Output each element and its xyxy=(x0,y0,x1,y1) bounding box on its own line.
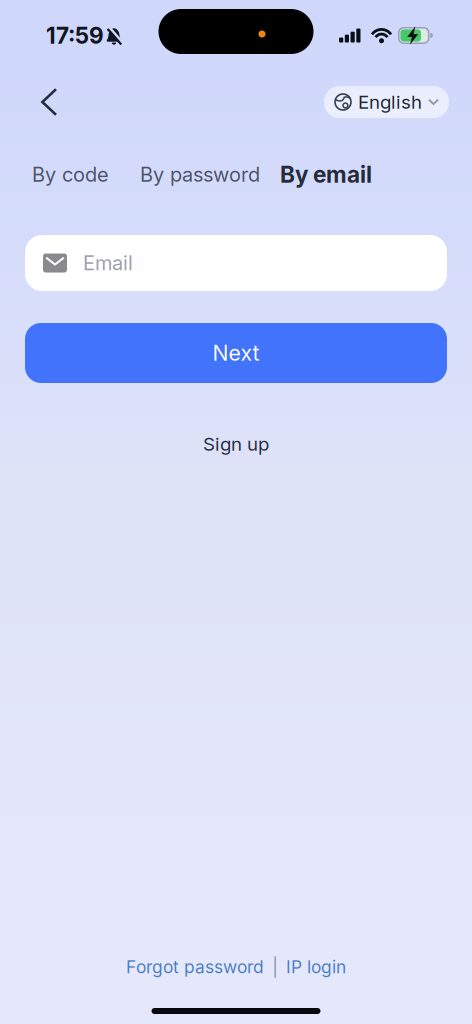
staticText: Sign up xyxy=(203,433,269,455)
button[interactable]: Back xyxy=(37,82,61,122)
staticText: Next xyxy=(212,340,259,366)
staticText: By password xyxy=(140,163,260,186)
button[interactable]: IP login xyxy=(286,957,346,977)
button[interactable]: By email xyxy=(280,161,372,188)
button[interactable]: By code xyxy=(32,163,109,186)
staticText: By code xyxy=(32,163,109,186)
staticText: English xyxy=(358,91,422,113)
staticText: | xyxy=(272,956,278,978)
staticText: IP login xyxy=(286,957,346,977)
staticText: By email xyxy=(280,161,372,188)
staticText: Email xyxy=(83,251,133,275)
staticText: Forgot password xyxy=(126,957,264,977)
staticText: 17:59 xyxy=(46,22,104,49)
button[interactable]: Language: English xyxy=(324,86,449,118)
button[interactable]: Next xyxy=(25,323,447,383)
button[interactable]: By password xyxy=(140,163,260,186)
button[interactable]: Forgot password xyxy=(126,957,264,977)
button[interactable]: Sign up xyxy=(203,433,269,455)
